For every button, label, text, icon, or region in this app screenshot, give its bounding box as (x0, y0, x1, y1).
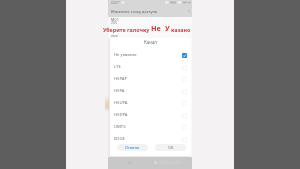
staticText: 255 (111, 20, 117, 25)
button[interactable]: Не указано (110, 49, 191, 61)
button[interactable]: More options (187, 9, 191, 13)
staticText: LTE (114, 64, 121, 70)
button[interactable]: OK (155, 144, 186, 151)
staticText: HSPA (114, 88, 125, 94)
staticText: казано (171, 26, 191, 33)
staticText: HSDPA (114, 112, 128, 118)
staticText: EDGE (114, 136, 125, 142)
button[interactable]: HSDPA (110, 109, 191, 121)
button[interactable]: HSUPA (110, 97, 191, 109)
button[interactable]: HSPAP (110, 73, 191, 85)
staticText: Не (151, 23, 161, 33)
staticText: Канал (110, 39, 191, 45)
staticText: MCC (111, 17, 119, 22)
button[interactable]: EDGE (110, 133, 191, 145)
staticText: HSPAP (114, 76, 127, 82)
staticText: OK (168, 145, 174, 150)
staticText: У (165, 23, 170, 33)
staticText: Изменить точку доступа (111, 9, 158, 14)
button[interactable]: UMTS (110, 121, 191, 133)
button[interactable]: Отмена (117, 144, 148, 151)
button[interactable]: Back (126, 161, 131, 164)
button[interactable]: LTE (110, 61, 191, 73)
staticText: имя (111, 33, 118, 38)
button[interactable]: HSPA (110, 85, 191, 97)
staticText: UMTS (114, 124, 126, 130)
staticText: Не указано (114, 52, 137, 58)
staticText: HSUPA (114, 100, 128, 106)
staticText: Уберите галочку (103, 26, 150, 33)
staticText: Отмена (125, 145, 140, 150)
